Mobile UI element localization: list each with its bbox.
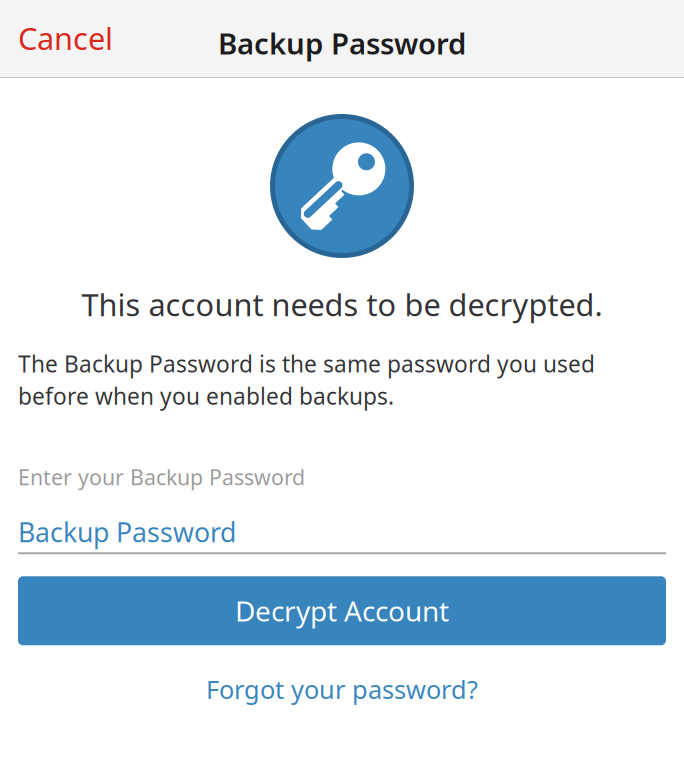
staticText: Decrypt Account xyxy=(235,592,449,629)
staticText: Backup Password xyxy=(18,514,236,550)
staticText: Enter your Backup Password xyxy=(18,463,305,491)
staticText: This account needs to be decrypted. xyxy=(81,284,602,325)
staticText: Backup Password xyxy=(218,23,466,62)
staticText: Cancel xyxy=(18,18,113,58)
button[interactable]: Backup Password xyxy=(18,514,666,554)
button[interactable]: Cancel xyxy=(0,5,131,73)
button[interactable]: Forgot your password? xyxy=(18,661,666,717)
staticText: Forgot your password? xyxy=(206,672,478,706)
button[interactable]: Decrypt Account xyxy=(18,576,666,645)
staticText: The Backup Password is the same password… xyxy=(18,349,595,411)
